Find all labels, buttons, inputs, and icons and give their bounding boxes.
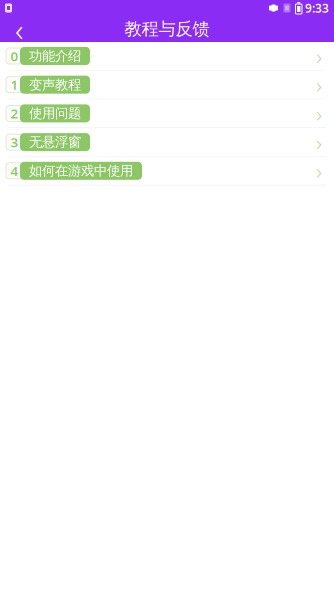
staticText: 1 bbox=[10, 76, 18, 93]
staticText: ‹ bbox=[15, 8, 23, 50]
staticText: 功能介绍 bbox=[29, 48, 81, 64]
button[interactable]: 1 bbox=[0, 71, 334, 99]
staticText: 无悬浮窗 bbox=[29, 134, 81, 150]
staticText: 变声教程 bbox=[29, 76, 81, 93]
button[interactable]: 0 bbox=[0, 42, 334, 70]
staticText: 0 bbox=[10, 47, 18, 65]
staticText: › bbox=[316, 127, 322, 157]
staticText: 9:33 bbox=[305, 0, 329, 16]
staticText: 使用问题 bbox=[29, 105, 81, 122]
staticText: 如何在游戏中使用 bbox=[29, 163, 133, 179]
button[interactable]: 4 bbox=[0, 157, 334, 185]
staticText: › bbox=[316, 70, 322, 100]
button[interactable]: Back bbox=[0, 16, 38, 42]
button[interactable]: 2 bbox=[0, 99, 334, 127]
staticText: 2 bbox=[10, 104, 18, 122]
staticText: 4 bbox=[10, 162, 18, 180]
staticText: › bbox=[316, 41, 322, 71]
button[interactable]: 3 bbox=[0, 128, 334, 156]
staticText: 教程与反馈 bbox=[124, 18, 209, 40]
staticText: › bbox=[316, 98, 322, 128]
staticText: 3 bbox=[10, 133, 18, 151]
staticText: › bbox=[316, 156, 322, 186]
